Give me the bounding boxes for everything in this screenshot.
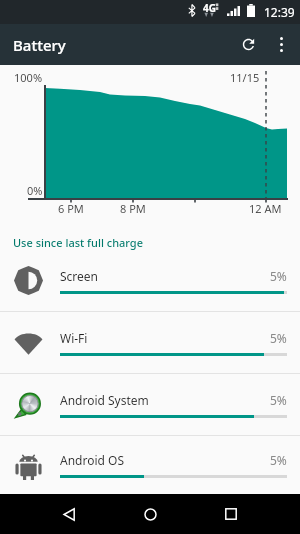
button[interactable]: Wi-Fi	[0, 312, 300, 373]
staticText: 4G	[203, 1, 216, 15]
staticText: Android System	[60, 392, 270, 408]
staticText: 6 PM	[58, 201, 84, 215]
staticText: 5%	[270, 330, 287, 346]
button[interactable]: Android System	[0, 374, 300, 435]
staticText: 11/15	[230, 70, 260, 85]
staticText: 0%	[27, 183, 43, 198]
staticText: 5%	[270, 392, 287, 408]
staticText: 5%	[270, 452, 287, 468]
staticText: Screen	[60, 268, 270, 284]
button[interactable]: Screen	[0, 250, 300, 311]
button[interactable]: Recents	[200, 494, 262, 534]
staticText: 12 AM	[249, 201, 282, 215]
staticText: 5%	[270, 268, 287, 284]
staticText: Wi-Fi	[60, 330, 270, 346]
button[interactable]: Android OS	[0, 436, 300, 494]
button[interactable]: Home	[119, 494, 181, 534]
staticText: 8 PM	[120, 201, 146, 215]
staticText: Battery	[13, 35, 66, 55]
button[interactable]: More options	[266, 24, 296, 65]
button[interactable]: Refresh	[230, 24, 266, 65]
staticText: Android OS	[60, 452, 270, 468]
staticText: 12:39	[264, 4, 295, 20]
staticText: 100%	[14, 70, 43, 85]
staticText: Use since last full charge	[13, 235, 143, 250]
button[interactable]: Back	[38, 494, 100, 534]
